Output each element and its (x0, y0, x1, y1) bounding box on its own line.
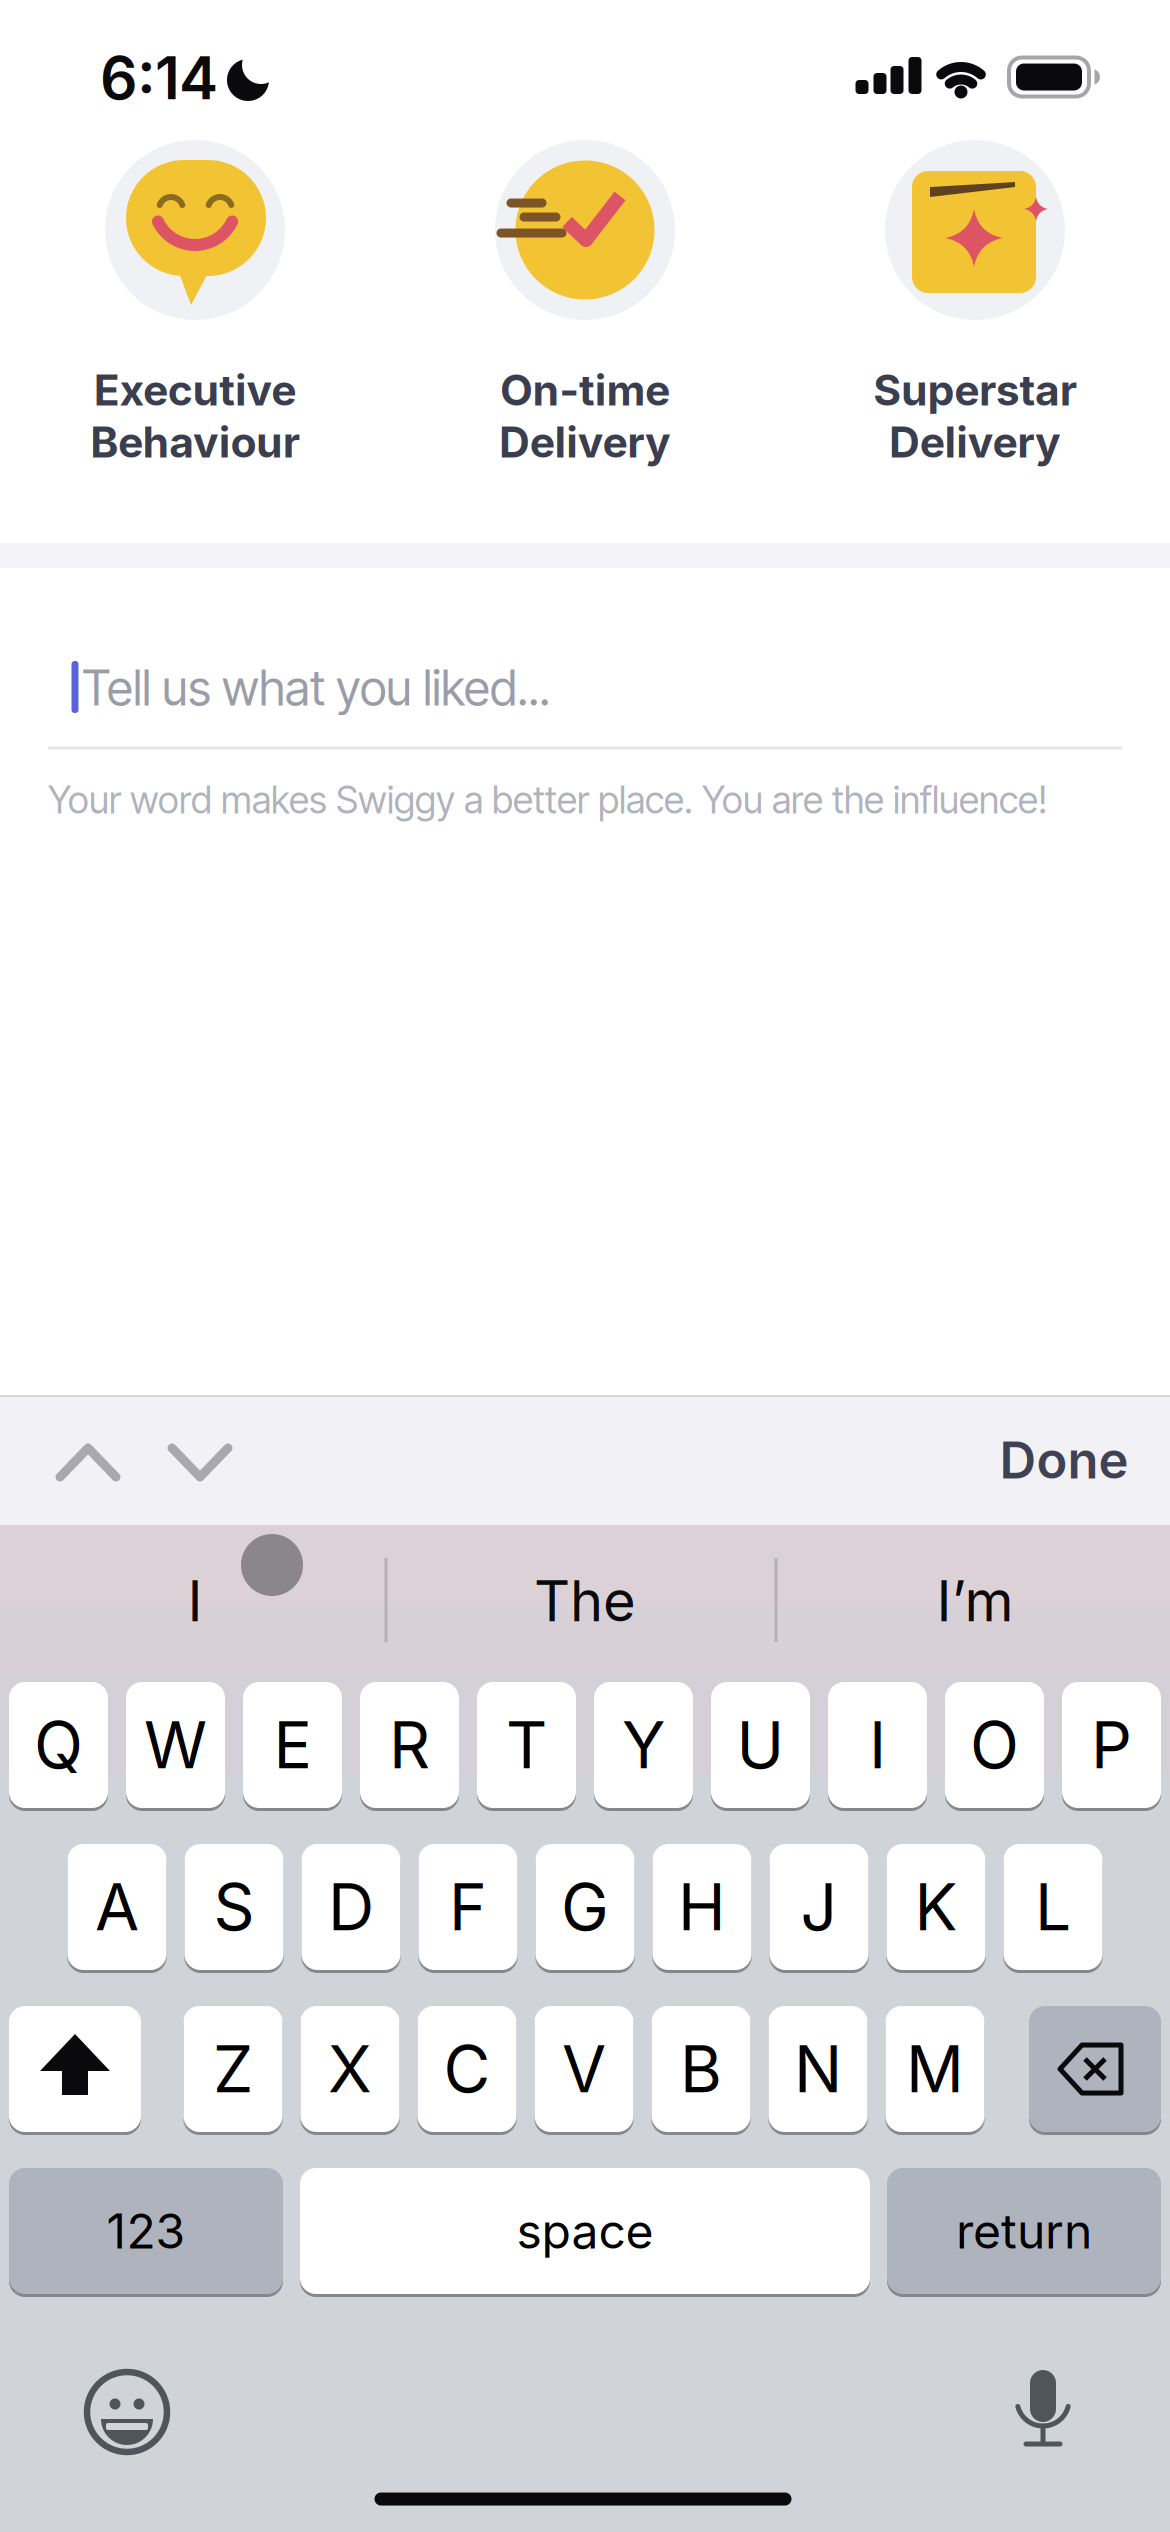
button[interactable]: return (0, 0, 1170, 2532)
button[interactable]: I’m (0, 0, 1170, 2532)
button[interactable]: Shift (0, 0, 1170, 2532)
button[interactable]: O (0, 0, 1170, 2532)
staticText: Tell us what you liked... (82, 659, 550, 717)
staticText: Your word makes Swiggy a better place. Y… (48, 777, 1047, 823)
button[interactable]: R (0, 0, 1170, 2532)
button[interactable]: N (0, 0, 1170, 2532)
staticText: C (443, 2030, 490, 2108)
staticText: I (869, 1706, 886, 1784)
staticText: S (213, 1868, 254, 1946)
button[interactable]: H (0, 0, 1170, 2532)
staticText: E (273, 1706, 311, 1784)
staticText: J (800, 1868, 837, 1946)
button[interactable]: A (0, 0, 1170, 2532)
button[interactable]: F (0, 0, 1170, 2532)
staticText: return (956, 2202, 1092, 2260)
button[interactable]: P (0, 0, 1170, 2532)
staticText: O (970, 1706, 1019, 1784)
button[interactable]: M (0, 0, 1170, 2532)
staticText: T (506, 1706, 547, 1784)
staticText: G (561, 1868, 609, 1946)
staticText: I’m (936, 1567, 1013, 1635)
staticText: Q (34, 1706, 83, 1784)
button[interactable]: 123 (0, 0, 1170, 2532)
button[interactable]: Dictation (0, 0, 1170, 2532)
staticText: N (794, 2030, 842, 2108)
staticText: space (516, 2202, 653, 2260)
staticText: L (1035, 1868, 1071, 1946)
button[interactable]: S (0, 0, 1170, 2532)
button[interactable]: D (0, 0, 1170, 2532)
staticText: Executive (94, 364, 296, 416)
staticText: U (736, 1706, 784, 1784)
staticText: H (678, 1868, 726, 1946)
staticText: R (389, 1706, 430, 1784)
button[interactable]: Delete (0, 0, 1170, 2532)
button[interactable]: J (0, 0, 1170, 2532)
button[interactable]: I (0, 0, 1170, 2532)
staticText: Y (622, 1706, 665, 1784)
staticText: Delivery (889, 416, 1061, 468)
staticText: 6:14 (100, 42, 218, 113)
staticText: Superstar (873, 364, 1077, 416)
button[interactable]: T (0, 0, 1170, 2532)
staticText: P (1091, 1706, 1132, 1784)
button[interactable]: Y (0, 0, 1170, 2532)
staticText: On-time (500, 364, 670, 416)
button[interactable]: Tell us what you liked (0, 0, 1170, 2532)
staticText: 123 (106, 2202, 185, 2260)
staticText: A (95, 1868, 139, 1946)
button[interactable]: E (0, 0, 1170, 2532)
staticText: Done (999, 1429, 1128, 1491)
button[interactable]: Done (0, 0, 1170, 2532)
staticText: X (328, 2030, 372, 2108)
staticText: Behaviour (90, 416, 300, 468)
staticText: D (328, 1868, 374, 1946)
staticText: W (144, 1706, 207, 1784)
button[interactable]: On-time Delivery (0, 0, 1170, 2532)
staticText: V (562, 2030, 606, 2108)
button[interactable]: B (0, 0, 1170, 2532)
staticText: F (449, 1868, 487, 1946)
button[interactable]: U (0, 0, 1170, 2532)
staticText: Z (213, 2030, 253, 2108)
button[interactable]: Executive Behaviour (0, 0, 1170, 2532)
button[interactable]: X (0, 0, 1170, 2532)
button[interactable]: Previous field (0, 0, 1170, 2532)
button[interactable]: L (0, 0, 1170, 2532)
staticText: I (187, 1567, 202, 1635)
button[interactable]: W (0, 0, 1170, 2532)
button[interactable]: The (0, 0, 1170, 2532)
button[interactable]: V (0, 0, 1170, 2532)
button[interactable]: Next field (0, 0, 1170, 2532)
staticText: B (680, 2030, 722, 2108)
staticText: Delivery (499, 416, 671, 468)
button[interactable]: I (0, 0, 1170, 2532)
staticText: K (914, 1868, 957, 1946)
button[interactable]: Z (0, 0, 1170, 2532)
button[interactable]: Emoji (0, 0, 1170, 2532)
button[interactable]: space (0, 0, 1170, 2532)
staticText: M (906, 2030, 964, 2108)
button[interactable]: K (0, 0, 1170, 2532)
button[interactable]: G (0, 0, 1170, 2532)
staticText: The (534, 1567, 636, 1635)
button[interactable]: Q (0, 0, 1170, 2532)
button[interactable]: C (0, 0, 1170, 2532)
button[interactable]: Superstar Delivery (0, 0, 1170, 2532)
